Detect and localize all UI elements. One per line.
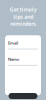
staticText: · bbox=[22, 93, 23, 99]
staticText: Name bbox=[8, 57, 19, 62]
button[interactable]: · bbox=[22, 93, 23, 99]
staticText: Email bbox=[8, 40, 18, 45]
staticText: Get timely tips and reminders bbox=[9, 6, 36, 27]
